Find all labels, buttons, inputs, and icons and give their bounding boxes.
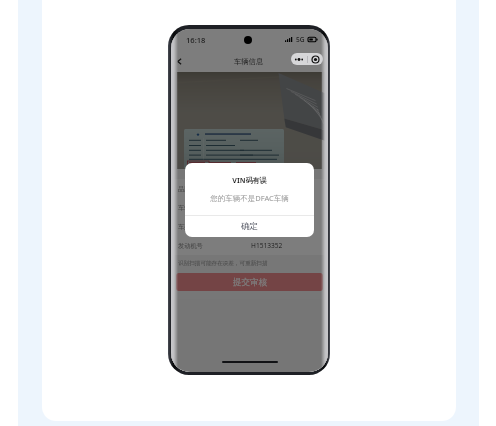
staticText: H1513352 (251, 241, 283, 250)
staticText: 车架号 (178, 223, 197, 231)
staticText: 提交审核 (233, 277, 267, 288)
button[interactable]: 车辆类型 (171, 198, 328, 217)
button[interactable]: Back (173, 55, 186, 68)
button[interactable]: 车架号 (171, 217, 328, 236)
staticText: VIN码有误 (185, 175, 314, 185)
staticText: 品牌型号 (178, 185, 203, 193)
button[interactable]: 品牌型号 (171, 179, 328, 198)
staticText: 车辆类型 (178, 204, 203, 212)
button[interactable]: 提交审核 (176, 273, 323, 291)
staticText: LGAX123456789 (251, 222, 302, 231)
staticText: 5G (296, 35, 305, 44)
staticText: 识别扫描可能存在误差，可重新扫描 (178, 260, 268, 267)
button[interactable]: 发动机号 (171, 236, 328, 255)
staticText: 16:18 (186, 35, 206, 45)
staticText: 车辆信息 (234, 57, 264, 66)
staticText: 您的车辆不是DFAC车辆 (185, 193, 314, 203)
staticText: 发动机号 (178, 242, 203, 250)
button[interactable]: More options (291, 53, 323, 65)
button[interactable]: 确定 (185, 216, 314, 237)
staticText: 确定 (241, 221, 258, 232)
